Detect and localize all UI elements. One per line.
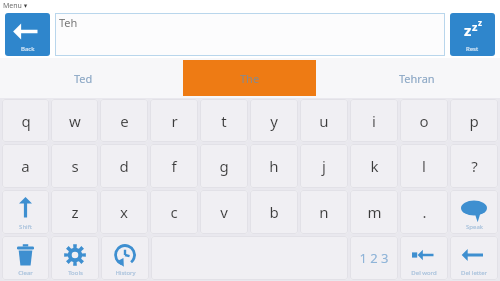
staticText: r	[171, 111, 178, 131]
button[interactable]: k	[350, 144, 398, 188]
button[interactable]: Space	[151, 236, 348, 280]
button[interactable]: a	[2, 144, 49, 188]
staticText: g	[219, 156, 229, 176]
button[interactable]: p	[450, 99, 498, 142]
staticText: l	[422, 156, 426, 176]
button[interactable]: v	[200, 190, 248, 234]
staticText: v	[220, 202, 228, 222]
button[interactable]: r	[150, 99, 198, 142]
button[interactable]: e	[100, 99, 148, 142]
staticText: k	[370, 156, 379, 176]
button[interactable]: c	[150, 190, 198, 234]
staticText: x	[120, 202, 128, 222]
button[interactable]: Tehran	[333, 58, 500, 98]
button[interactable]: s	[51, 144, 98, 188]
button[interactable]: Clear	[2, 236, 49, 280]
staticText: w	[69, 111, 81, 131]
staticText: j	[322, 156, 326, 176]
staticText: z	[472, 19, 478, 34]
staticText: Tehran	[399, 71, 435, 86]
staticText: The	[240, 71, 260, 86]
button[interactable]: Shift	[2, 190, 49, 234]
button[interactable]: g	[200, 144, 248, 188]
staticText: Shift	[19, 223, 32, 231]
button[interactable]: x	[100, 190, 148, 234]
button[interactable]: Delete letter	[450, 236, 498, 280]
button[interactable]: f	[150, 144, 198, 188]
button[interactable]: j	[300, 144, 348, 188]
staticText: c	[170, 202, 178, 222]
staticText: t	[221, 111, 227, 131]
button[interactable]: Back	[5, 13, 50, 56]
button[interactable]: 1 2 3	[350, 236, 398, 280]
button[interactable]: l	[400, 144, 448, 188]
staticText: Del word	[411, 269, 437, 277]
button[interactable]: m	[350, 190, 398, 234]
staticText: u	[319, 111, 329, 131]
button[interactable]: w	[51, 99, 98, 142]
staticText: z	[71, 202, 79, 222]
staticText: f	[171, 156, 177, 176]
button[interactable]: Ted	[0, 58, 166, 98]
button[interactable]: ?	[450, 144, 498, 188]
staticText: d	[119, 156, 129, 176]
staticText: y	[270, 111, 278, 131]
button[interactable]: Tools	[51, 236, 99, 280]
staticText: e	[120, 111, 129, 131]
staticText: n	[319, 202, 329, 222]
staticText: Back	[21, 45, 35, 53]
staticText: a	[21, 156, 30, 176]
staticText: .	[422, 202, 427, 222]
button[interactable]: h	[250, 144, 298, 188]
staticText: Speak	[466, 223, 483, 231]
button[interactable]: .	[400, 190, 448, 234]
button[interactable]: Delete word	[400, 236, 448, 280]
staticText: b	[269, 202, 279, 222]
button[interactable]: History	[101, 236, 149, 280]
button[interactable]: Speak	[450, 190, 498, 234]
button[interactable]: o	[400, 99, 448, 142]
button[interactable]: b	[250, 190, 298, 234]
button[interactable]: i	[350, 99, 398, 142]
staticText: Tools	[68, 269, 83, 277]
button[interactable]: y	[250, 99, 298, 142]
staticText: q	[21, 111, 31, 131]
button[interactable]: The	[166, 58, 333, 98]
button[interactable]: d	[100, 144, 148, 188]
staticText: p	[469, 111, 479, 131]
button[interactable]: u	[300, 99, 348, 142]
button[interactable]: z	[51, 190, 98, 234]
staticText: Del letter	[461, 269, 487, 277]
staticText: z	[478, 17, 482, 28]
staticText: History	[115, 269, 136, 277]
staticText: Clear	[18, 269, 33, 277]
staticText: Teh	[59, 15, 78, 30]
staticText: i	[372, 111, 376, 131]
button[interactable]: q	[2, 99, 49, 142]
staticText: z	[464, 20, 472, 40]
staticText: o	[419, 111, 429, 131]
button[interactable]: n	[300, 190, 348, 234]
staticText: Rest	[466, 45, 479, 53]
button[interactable]: Rest	[450, 13, 495, 56]
button[interactable]: t	[200, 99, 248, 142]
button[interactable]: Teh	[55, 13, 445, 56]
staticText: Ted	[74, 71, 93, 86]
staticText: s	[71, 156, 79, 176]
staticText: ?	[471, 156, 478, 176]
staticText: 1 2 3	[359, 249, 389, 267]
staticText: h	[269, 156, 279, 176]
staticText: Menu ▾	[3, 1, 28, 11]
staticText: m	[367, 202, 382, 222]
